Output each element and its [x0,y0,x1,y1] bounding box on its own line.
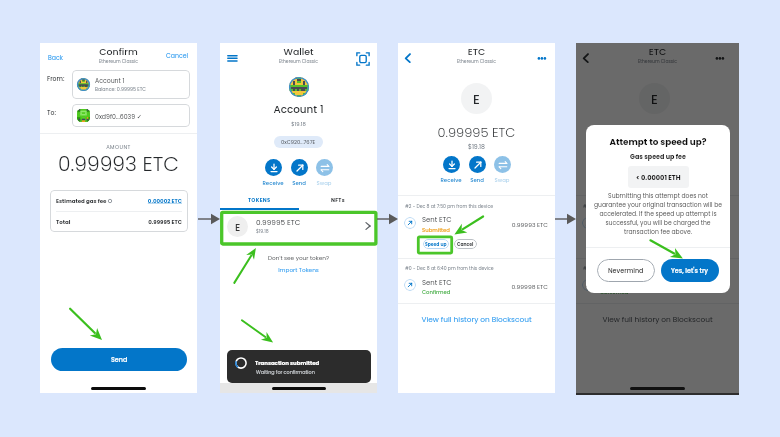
staticText: Wallet [220,45,377,58]
button[interactable]: Cancel [454,239,477,249]
staticText: #2 - Dec 8 at 7:50 pm from this device [583,203,672,209]
staticText: Sent ETC [422,215,452,225]
staticText: ETC [398,45,555,58]
staticText: 0.00002 ETC [140,197,182,205]
staticText: E [473,90,480,108]
staticText: Confirmed [600,288,629,295]
staticText: 0.99995 ETC [398,123,555,141]
button[interactable]: Cancel [632,239,655,249]
staticText: #0 - Dec 8 at 6:40 pm from this device [405,265,494,271]
staticText: Confirmed [422,288,451,295]
button[interactable]: View full history on Blockscout [576,312,739,322]
staticText: Ethereum Classic [398,58,555,64]
staticText: Swap [660,176,700,184]
staticText: Sent ETC [600,278,630,288]
staticText: AMOUNT [40,144,197,151]
staticText: Swap [482,176,522,184]
staticText: #0 - Dec 8 at 6:40 pm from this device [583,265,672,271]
button[interactable]: E [220,211,377,244]
staticText: 0.99993 ETC [676,221,726,229]
button[interactable] [490,156,514,180]
staticText: Sent ETC [422,278,452,288]
staticText: Cancel [635,241,652,247]
staticText: ETC [576,45,739,58]
button[interactable]: Menu [225,51,239,63]
button[interactable] [668,156,692,180]
staticText: Waiting for confirmation [256,369,315,376]
button[interactable]: Cancel [156,51,195,60]
staticText: From: [47,74,65,83]
button[interactable] [287,159,311,183]
staticText: Ethereum Classic [40,58,197,64]
button[interactable]: NFTs [298,192,377,208]
staticText: Speed up [425,241,447,247]
button[interactable]: Account 1 [72,70,190,99]
staticText: Ethereum Classic [220,58,377,64]
staticText: 0.99993 ETC [498,221,548,229]
button[interactable]: 0xd9f0...6039 ✓ [72,104,190,127]
button[interactable] [261,159,285,183]
staticText: $19.18 [256,228,269,234]
staticText: 0xC920...767E [281,139,316,146]
staticText: Confirm [40,45,197,58]
staticText: $19.18 [398,142,555,151]
staticText: Import Tokens [220,266,377,274]
button[interactable]: More options [712,53,726,64]
staticText: #2 - Dec 8 at 7:50 pm from this device [405,203,494,209]
staticText: Send [635,176,675,184]
staticText: < 0.00001 ETH [636,173,681,182]
staticText: Submitted [600,226,628,233]
button[interactable] [617,156,641,180]
staticText: 0.99995 ETC [140,218,182,226]
button[interactable]: Import Tokens [220,264,377,272]
staticText: E [651,90,658,108]
button[interactable]: Speed up [423,239,449,249]
button[interactable]: Scan QR code [356,52,370,66]
button[interactable]: Yes, let's try [661,259,719,282]
staticText: Transaction submitted [255,359,320,367]
staticText: Swap [304,179,344,187]
staticText: Attempt to speed up? [586,136,730,148]
staticText: 0.99995 ETC [256,217,301,227]
staticText: NFTs [331,197,345,204]
staticText: Cancel [156,51,188,60]
button[interactable]: Speed up [601,239,627,249]
staticText: 0xd9f0...6039 ✓ [95,112,142,121]
button[interactable]: 0xC920...767E [274,136,323,148]
staticText: Submitting this attempt does not guarant… [593,192,723,236]
staticText: To: [47,108,56,117]
button[interactable]: Back [579,52,593,66]
button[interactable]: More options [534,53,548,64]
button[interactable] [643,156,667,180]
staticText: Gas speed up fee [586,152,730,161]
staticText: 0.99995 ETC [576,123,739,141]
staticText: $19.18 [576,142,739,151]
staticText: Ethereum Classic [576,58,739,64]
staticText: Send [457,176,497,184]
button[interactable]: Send [51,348,187,371]
staticText: TOKENS [248,197,271,204]
button[interactable] [312,159,336,183]
button[interactable]: Back [46,51,65,64]
staticText: View full history on Blockscout [398,314,555,324]
button[interactable] [439,156,463,180]
button[interactable]: Nevermind [597,259,655,282]
button[interactable]: View full history on Blockscout [398,312,555,322]
staticText: Account 1 [95,76,125,85]
staticText: Yes, let's try [671,266,709,275]
staticText: Balance: 0.99995 ETC [95,86,147,93]
staticText: Submitted [422,226,450,233]
staticText: Total [56,218,71,226]
staticText: Nevermind [608,266,644,275]
button[interactable] [465,156,489,180]
button[interactable]: Back [401,52,415,66]
staticText: Cancel [457,241,474,247]
staticText: Don't see your token? [220,254,377,262]
staticText: E [235,220,241,234]
staticText: Sent ETC [600,215,630,225]
staticText: Account 1 [220,102,377,117]
button[interactable]: TOKENS [220,192,298,208]
staticText: View full history on Blockscout [576,314,739,324]
